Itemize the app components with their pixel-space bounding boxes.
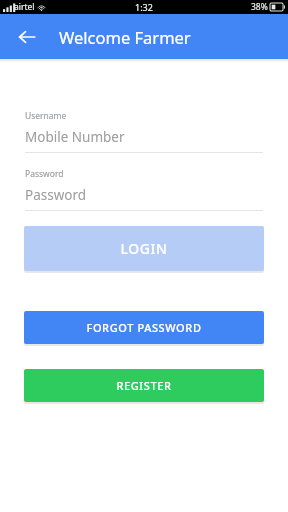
staticText: Mobile Number bbox=[25, 128, 125, 146]
staticText: 1:32 bbox=[135, 1, 153, 13]
button[interactable]: LOGIN bbox=[24, 226, 264, 271]
button[interactable]: Password bbox=[25, 168, 263, 211]
staticText: Welcome Farmer bbox=[59, 26, 191, 48]
staticText: 38% bbox=[251, 1, 268, 13]
staticText: Password bbox=[25, 168, 64, 180]
button[interactable]: Back bbox=[12, 22, 42, 52]
staticText: LOGIN bbox=[120, 239, 168, 258]
button[interactable]: Username bbox=[25, 110, 263, 153]
staticText: Username bbox=[25, 110, 67, 122]
staticText: airtel bbox=[14, 1, 35, 13]
button[interactable]: FORGOT PASSWORD bbox=[24, 311, 264, 344]
staticText: FORGOT PASSWORD bbox=[86, 320, 202, 335]
staticText: REGISTER bbox=[116, 378, 172, 393]
staticText: Password bbox=[25, 186, 87, 204]
button[interactable]: REGISTER bbox=[24, 369, 264, 402]
